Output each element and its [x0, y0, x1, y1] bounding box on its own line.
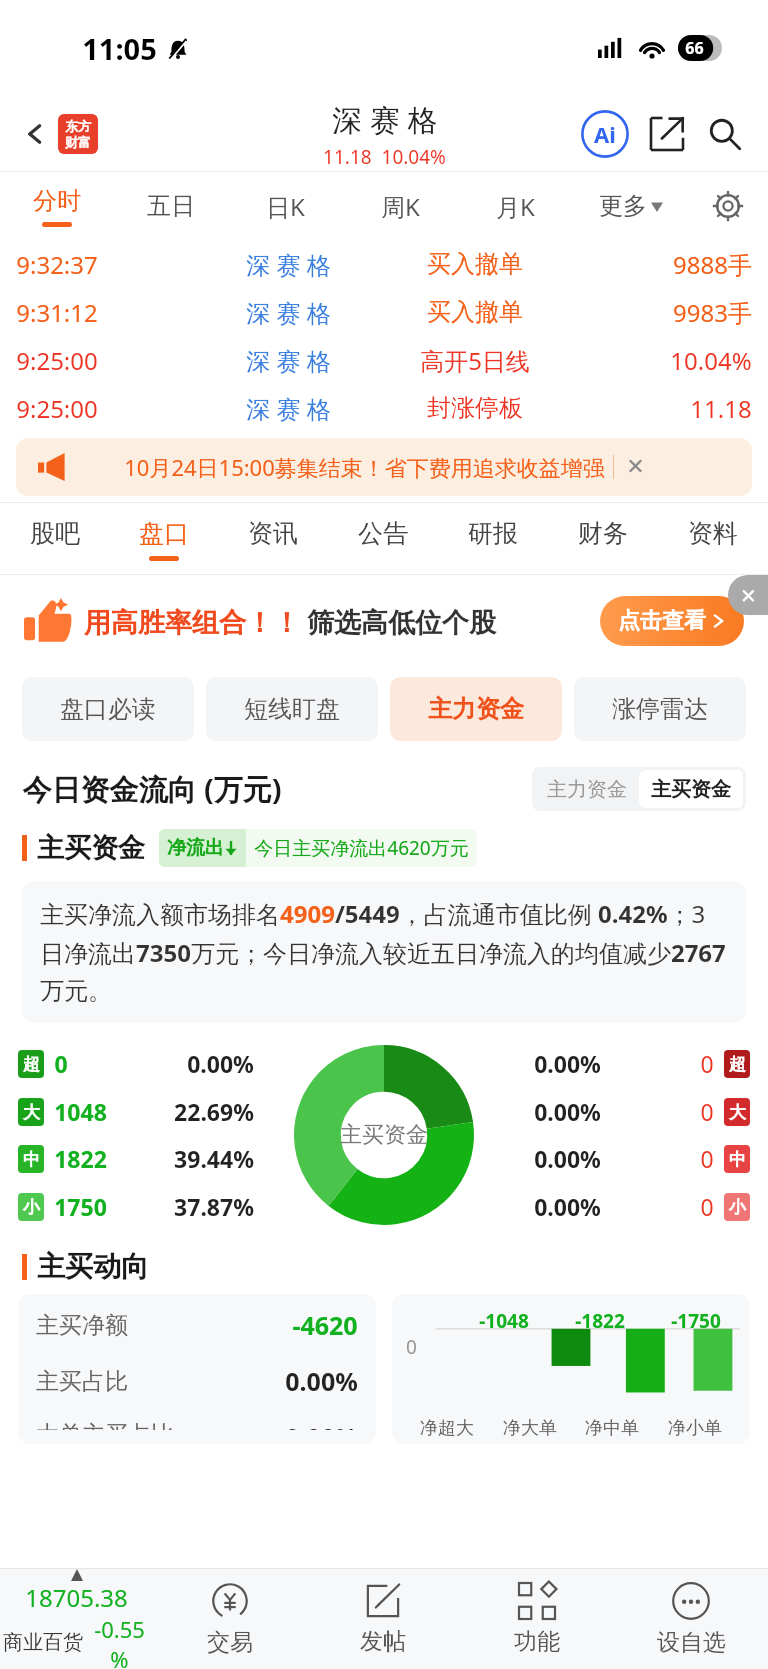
- button[interactable]: 涨停雷达: [574, 677, 746, 741]
- button[interactable]: 9:32:37: [0, 240, 768, 288]
- button[interactable]: 18705.38: [0, 1569, 153, 1669]
- button[interactable]: 研报: [438, 503, 548, 575]
- button[interactable]: 周K: [343, 172, 458, 240]
- button[interactable]: 股吧: [0, 503, 109, 575]
- staticText: 37.87%: [174, 1191, 254, 1222]
- staticText: 分时: [33, 186, 81, 216]
- staticText: 主买动向: [37, 1249, 149, 1284]
- staticText: 9983手: [673, 296, 752, 329]
- staticText: 日K: [266, 190, 305, 223]
- staticText: 深 赛 格: [246, 296, 331, 329]
- staticText: 功能: [514, 1627, 560, 1656]
- button[interactable]: 主力资金: [390, 677, 562, 741]
- button[interactable]: Close ad: [728, 575, 768, 615]
- staticText: 点击查看: [618, 607, 706, 635]
- button[interactable]: 盘口必读: [22, 677, 194, 741]
- staticText: 0: [700, 1191, 714, 1222]
- button[interactable]: Search: [702, 111, 748, 157]
- staticText: ✕: [626, 454, 645, 480]
- button[interactable]: 9:25:00: [0, 336, 768, 384]
- button[interactable]: 交易: [153, 1569, 306, 1669]
- button[interactable]: 9:25:00: [0, 384, 768, 432]
- button[interactable]: 主买资金: [639, 770, 743, 808]
- staticText: 0.00%: [534, 1191, 601, 1222]
- staticText: 0: [406, 1334, 417, 1360]
- staticText: 高开5日线: [420, 344, 530, 377]
- button[interactable]: Settings: [688, 172, 768, 240]
- staticText: 0.00%: [285, 1364, 358, 1398]
- staticText: 盘口必读: [60, 694, 156, 724]
- staticText: 0.00%: [187, 1048, 254, 1079]
- button[interactable]: 月K: [458, 172, 573, 240]
- staticText: 0.00%: [285, 1420, 358, 1430]
- button[interactable]: 盘口: [109, 503, 218, 575]
- staticText: 研报: [468, 518, 518, 549]
- staticText: 买入撤单: [427, 297, 523, 327]
- staticText: 大: [729, 1102, 746, 1123]
- button[interactable]: 更多: [573, 172, 688, 240]
- button[interactable]: 财务: [548, 503, 658, 575]
- staticText: 东方: [65, 118, 91, 134]
- staticText: 净流出: [167, 836, 224, 860]
- staticText: 0: [700, 1048, 714, 1079]
- button[interactable]: 设自选: [614, 1569, 768, 1669]
- button[interactable]: 9:31:12: [0, 288, 768, 336]
- staticText: 买入撤单: [427, 249, 523, 279]
- button[interactable]: 短线盯盘: [206, 677, 378, 741]
- staticText: 超: [23, 1054, 40, 1075]
- staticText: -1750: [671, 1308, 721, 1334]
- staticText: Ai: [594, 119, 616, 149]
- staticText: 深 赛 格: [246, 344, 331, 377]
- staticText: 大: [23, 1102, 40, 1123]
- button[interactable]: AI: [580, 109, 630, 159]
- button[interactable]: 用高胜率组合！！ 筛选高低位个股: [0, 575, 768, 667]
- staticText: 更多: [599, 191, 647, 221]
- staticText: 0: [54, 1048, 68, 1079]
- staticText: 11.18 10.04%: [323, 144, 446, 170]
- staticText: 封涨停板: [427, 393, 523, 423]
- staticText: 主力资金: [547, 777, 627, 802]
- button[interactable]: 主力资金: [535, 770, 639, 808]
- staticText: 净小单: [668, 1417, 722, 1440]
- staticText: 主买占比: [36, 1367, 128, 1396]
- button[interactable]: Back: [14, 108, 106, 160]
- staticText: 9:25:00: [16, 344, 98, 377]
- staticText: 1048: [54, 1096, 107, 1127]
- staticText: 今日主买净流出4620万元: [254, 835, 469, 861]
- button[interactable]: 公告: [328, 503, 438, 575]
- staticText: 22.69%: [174, 1096, 254, 1127]
- staticText: 0: [700, 1143, 714, 1174]
- staticText: 主买资金: [651, 777, 731, 802]
- button[interactable]: 10月24日15:00募集结束！省下费用追求收益增强: [16, 438, 752, 496]
- staticText: 净中单: [585, 1417, 639, 1440]
- button[interactable]: 资料: [658, 503, 768, 575]
- staticText: 发帖: [360, 1627, 406, 1656]
- button[interactable]: 点击查看: [600, 596, 744, 646]
- staticText: -1048: [479, 1308, 529, 1334]
- button[interactable]: 发帖: [306, 1569, 460, 1669]
- staticText: 净大单: [503, 1417, 557, 1440]
- staticText: -4620: [292, 1308, 358, 1342]
- staticText: 净超大: [420, 1417, 474, 1440]
- button[interactable]: 日K: [228, 172, 343, 240]
- staticText: 中: [23, 1149, 40, 1170]
- button[interactable]: 资讯: [218, 503, 328, 575]
- staticText: ✕: [740, 584, 757, 607]
- staticText: 主买资金: [37, 831, 145, 865]
- staticText: 超: [729, 1054, 746, 1075]
- staticText: 深 赛 格: [246, 248, 331, 281]
- staticText: 财务: [578, 518, 628, 549]
- button[interactable]: 分时: [0, 172, 114, 240]
- button[interactable]: 功能: [460, 1569, 614, 1669]
- staticText: 周K: [381, 190, 420, 223]
- button[interactable]: Share: [644, 111, 690, 157]
- staticText: 大单主买占比: [36, 1420, 174, 1430]
- staticText: 0.00%: [534, 1143, 601, 1174]
- staticText: 10.04%: [670, 344, 752, 377]
- staticText: 1822: [54, 1143, 107, 1174]
- staticText: 小: [23, 1197, 40, 1218]
- button[interactable]: 五日: [114, 172, 228, 240]
- staticText: 财富: [65, 134, 91, 150]
- staticText: 11:05: [82, 29, 157, 68]
- staticText: 五日: [147, 191, 195, 221]
